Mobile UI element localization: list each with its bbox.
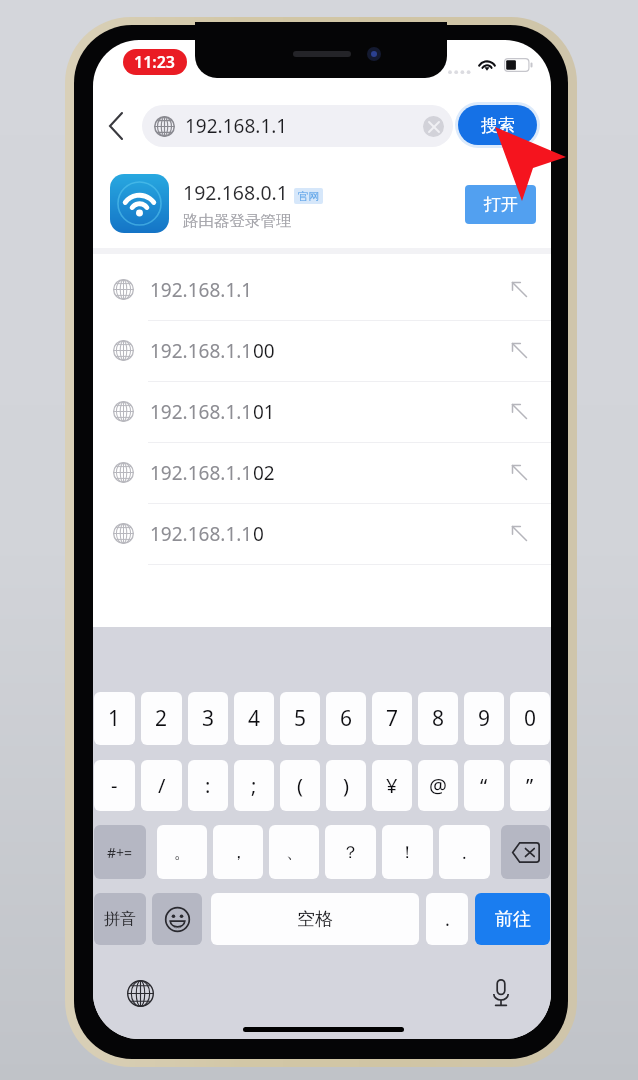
other: Use suggestion — [511, 525, 528, 542]
button[interactable]: 192.168.1.1 — [93, 503, 551, 564]
button[interactable]: 192.168.1.1 — [93, 442, 551, 503]
staticText: 0 — [253, 521, 264, 547]
button[interactable]: @ — [418, 760, 458, 811]
other: Use suggestion — [511, 403, 528, 420]
staticText: 路由器登录管理 — [183, 211, 292, 231]
staticText: ” — [526, 772, 534, 799]
staticText: 1 — [108, 704, 121, 733]
button[interactable]: Emoji — [152, 893, 202, 945]
button[interactable]: Dictate — [483, 975, 519, 1011]
button[interactable]: 6 — [326, 692, 366, 745]
staticText: 00 — [253, 338, 275, 364]
button[interactable]: 9 — [464, 692, 504, 745]
staticText: “ — [480, 772, 488, 799]
button[interactable]: . — [439, 825, 490, 879]
button[interactable]: ¥ — [372, 760, 412, 811]
button[interactable]: 192.168.1.1 — [93, 381, 551, 442]
staticText: . — [462, 841, 467, 864]
button[interactable]: : — [188, 760, 228, 811]
button[interactable]: 前往 — [475, 893, 550, 945]
button[interactable]: 打开 — [465, 185, 536, 224]
button[interactable]: ？ — [325, 825, 376, 879]
staticText: 官网 — [298, 190, 319, 203]
button[interactable]: 192.168.0.1 — [93, 160, 551, 248]
button[interactable]: Clear — [423, 116, 444, 137]
staticText: ¥ — [386, 772, 398, 799]
staticText: 8 — [432, 704, 445, 733]
button[interactable]: ( — [280, 760, 320, 811]
staticText: ！ — [399, 842, 416, 863]
button[interactable]: ; — [234, 760, 274, 811]
button[interactable]: - — [94, 760, 135, 811]
staticText: 。 — [174, 842, 191, 863]
staticText: 9 — [478, 704, 491, 733]
button[interactable]: 5 — [280, 692, 320, 745]
staticText: 3 — [202, 704, 215, 733]
button[interactable]: ” — [510, 760, 550, 811]
button[interactable]: Back — [99, 110, 131, 142]
button[interactable]: 192.168.1.1 — [93, 259, 551, 320]
staticText: 、 — [286, 842, 303, 863]
staticText: 192.168.0.1 — [183, 179, 288, 206]
button[interactable]: 、 — [269, 825, 319, 879]
staticText: 192.168.1.1 — [150, 399, 253, 425]
staticText: 前往 — [495, 908, 531, 931]
button[interactable]: 3 — [188, 692, 228, 745]
staticText: ， — [230, 842, 247, 863]
button[interactable]: ！ — [382, 825, 433, 879]
staticText: 192.168.1.1 — [150, 338, 253, 364]
staticText: @ — [429, 772, 447, 799]
staticText: 11:23 — [134, 51, 176, 73]
button[interactable]: 7 — [372, 692, 412, 745]
button[interactable]: 0 — [510, 692, 550, 745]
button[interactable]: ， — [213, 825, 263, 879]
button[interactable]: 空格 — [211, 893, 419, 945]
staticText: 192.168.1.1 — [150, 521, 253, 547]
button[interactable]: 4 — [234, 692, 274, 745]
button[interactable]: . — [426, 893, 468, 945]
button[interactable]: “ — [464, 760, 504, 811]
staticText: ？ — [342, 842, 359, 863]
staticText: ( — [297, 772, 303, 799]
staticText: 搜索 — [481, 115, 515, 136]
button[interactable]: 搜索 — [458, 105, 537, 145]
staticText: ) — [343, 772, 349, 799]
staticText: ; — [251, 772, 257, 799]
staticText: #+= — [107, 843, 133, 862]
staticText: / — [158, 772, 166, 799]
button[interactable]: / — [141, 760, 182, 811]
staticText: 4 — [248, 704, 261, 733]
button[interactable]: #+= — [94, 825, 146, 879]
other: Use suggestion — [511, 281, 528, 298]
button[interactable]: 192.168.1.1 — [142, 105, 453, 147]
button[interactable]: 2 — [141, 692, 182, 745]
staticText: 6 — [340, 704, 353, 733]
button[interactable]: 拼音 — [94, 893, 146, 945]
button[interactable]: Change keyboard — [122, 975, 158, 1011]
button[interactable]: 8 — [418, 692, 458, 745]
staticText: 192.168.1.1 — [185, 113, 288, 139]
staticText: 2 — [155, 704, 168, 733]
button[interactable]: Delete — [501, 825, 550, 879]
other: Use suggestion — [511, 464, 528, 481]
button[interactable]: 。 — [157, 825, 207, 879]
other: Use suggestion — [511, 342, 528, 359]
staticText: - — [111, 772, 118, 799]
staticText: . — [445, 907, 450, 932]
button[interactable]: ) — [326, 760, 366, 811]
staticText: 拼音 — [104, 909, 136, 929]
staticText: 02 — [253, 460, 275, 486]
staticText: 192.168.1.1 — [150, 460, 253, 486]
staticText: 192.168.1.1 — [150, 277, 253, 303]
staticText: 5 — [294, 704, 307, 733]
staticText: : — [205, 772, 211, 799]
button[interactable]: 1 — [94, 692, 135, 745]
button[interactable]: 192.168.1.1 — [93, 320, 551, 381]
staticText: 0 — [524, 704, 537, 733]
staticText: 01 — [253, 399, 275, 425]
staticText: 空格 — [297, 908, 333, 931]
staticText: 打开 — [484, 194, 518, 215]
staticText: 7 — [386, 704, 399, 733]
